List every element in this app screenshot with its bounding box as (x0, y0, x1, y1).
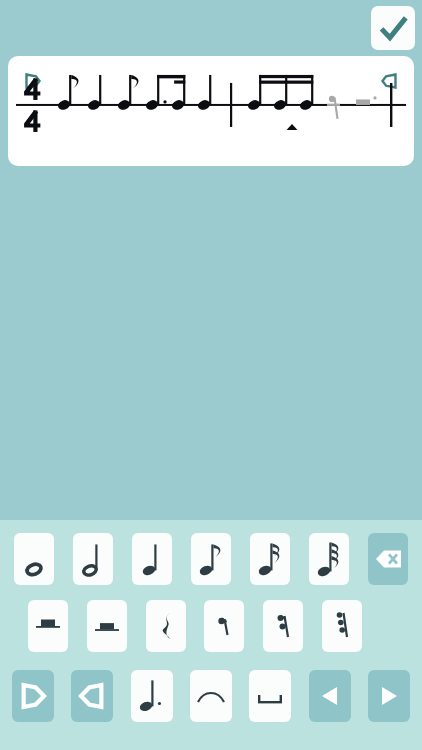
button[interactable]: Sixteenth rest (263, 600, 303, 652)
button[interactable]: Whole rest (28, 600, 68, 652)
button[interactable]: Eighth rest (204, 600, 244, 652)
button[interactable]: Confirm (371, 6, 415, 50)
button[interactable]: Triplet (249, 670, 291, 722)
button[interactable]: Repeat start (12, 670, 54, 722)
button[interactable]: Quarter rest (146, 600, 186, 652)
button[interactable]: Half note (73, 533, 113, 585)
button[interactable]: Tie (190, 670, 232, 722)
button[interactable]: Whole note (14, 533, 54, 585)
button[interactable] (8, 56, 414, 166)
button[interactable]: Quarter note (132, 533, 172, 585)
button[interactable]: Thirty-second rest (322, 600, 362, 652)
button[interactable]: Previous (309, 670, 351, 722)
button[interactable]: Dotted note (131, 670, 173, 722)
button[interactable]: Sixteenth note (250, 533, 290, 585)
button[interactable]: Delete (368, 533, 408, 585)
button[interactable]: Next (368, 670, 410, 722)
button[interactable]: Thirty-second note (309, 533, 349, 585)
button[interactable]: Half rest (87, 600, 127, 652)
button[interactable]: Eighth note (191, 533, 231, 585)
button[interactable]: Repeat end (71, 670, 113, 722)
